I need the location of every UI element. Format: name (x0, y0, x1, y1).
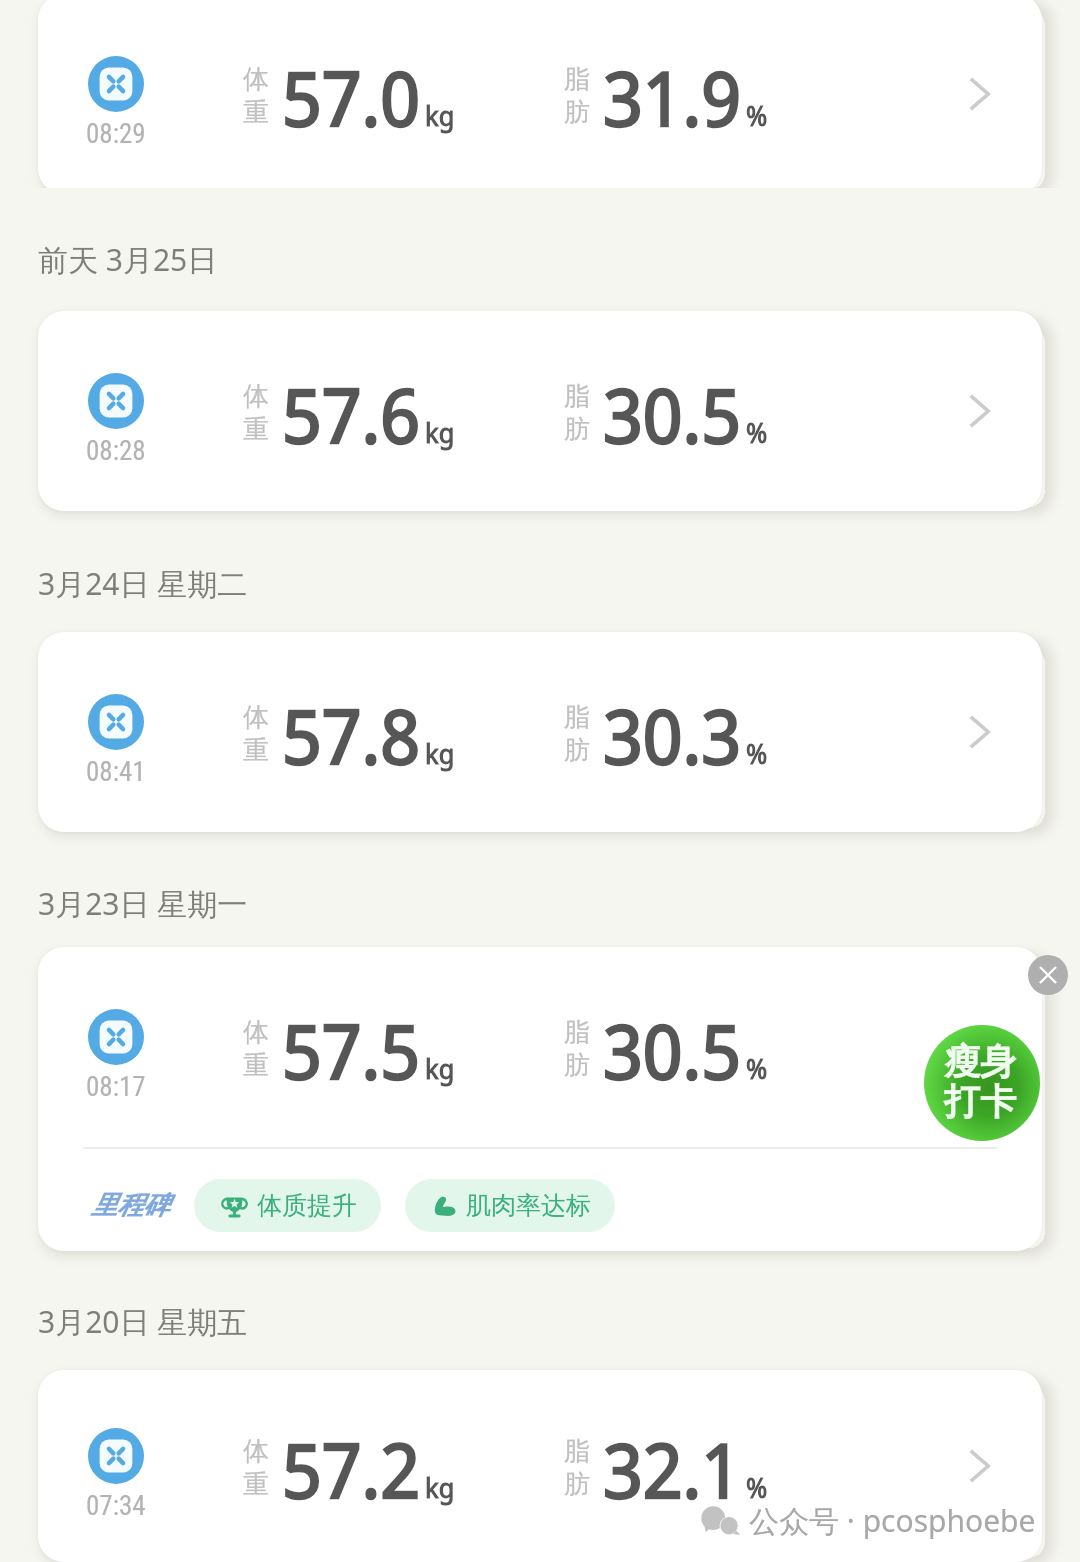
staticText: 30.5 (603, 1000, 742, 1101)
staticText: 07:34 (86, 1490, 146, 1522)
staticText: 重 (243, 1468, 269, 1501)
staticText: kg (425, 1469, 455, 1506)
staticText: 08:29 (86, 118, 146, 150)
button[interactable]: 瘦身 打卡 (924, 1025, 1040, 1141)
staticText: kg (425, 414, 455, 451)
staticText: 57.5 (282, 1000, 421, 1101)
staticText: kg (425, 1050, 455, 1087)
staticText: 重 (243, 734, 269, 767)
other: Open record details (969, 77, 990, 111)
staticText: kg (425, 97, 455, 134)
staticText: % (746, 1469, 768, 1506)
button[interactable]: 肌肉率达标 (405, 1179, 615, 1232)
button[interactable]: 体质提升 (194, 1179, 381, 1232)
staticText: % (746, 97, 768, 134)
staticText: 3月23日 星期一 (38, 883, 248, 924)
staticText: 脂 (564, 1435, 590, 1468)
staticText: 08:28 (86, 435, 146, 467)
staticText: 30.3 (603, 685, 742, 786)
other: Open record details (969, 394, 990, 428)
staticText: 肌肉率达标 (466, 1190, 591, 1221)
staticText: 脂 (564, 701, 590, 734)
staticText: 体 (243, 63, 269, 96)
staticText: 脂 (564, 63, 590, 96)
button[interactable]: 07:34 (38, 1370, 1042, 1562)
staticText: 肪 (564, 1049, 590, 1082)
staticText: 3月20日 星期五 (38, 1301, 248, 1342)
staticText: 3月24日 星期二 (38, 563, 248, 604)
staticText: 31.9 (603, 47, 742, 148)
staticText: 重 (243, 1049, 269, 1082)
staticText: 57.6 (282, 364, 421, 465)
staticText: 肪 (564, 1468, 590, 1501)
button[interactable]: Close (1028, 955, 1068, 995)
staticText: 32.1 (603, 1419, 742, 1520)
staticText: 57.8 (282, 685, 421, 786)
staticText: 08:17 (86, 1071, 146, 1103)
staticText: 肪 (564, 413, 590, 446)
staticText: % (746, 1050, 768, 1087)
other: Open record details (969, 1030, 990, 1064)
button[interactable]: 08:28 (38, 311, 1042, 511)
staticText: 30.5 (603, 364, 742, 465)
other: Open record details (969, 715, 990, 749)
staticText: 前天 3月25日 (38, 239, 218, 280)
staticText: kg (425, 735, 455, 772)
staticText: 体质提升 (257, 1190, 357, 1221)
staticText: % (746, 414, 768, 451)
staticText: 体 (243, 380, 269, 413)
staticText: 里程碑 (91, 1189, 169, 1222)
staticText: 肪 (564, 96, 590, 129)
button[interactable]: 08:17 (38, 947, 1042, 1147)
staticText: % (746, 735, 768, 772)
button[interactable]: 08:29 (38, 0, 1042, 188)
staticText: 体 (243, 701, 269, 734)
other: Open record details (969, 1449, 990, 1483)
staticText: 57.0 (282, 47, 421, 148)
staticText: 体 (243, 1435, 269, 1468)
staticText: 57.2 (282, 1419, 421, 1520)
staticText: 瘦身 打卡 (944, 1039, 1016, 1125)
staticText: 脂 (564, 380, 590, 413)
staticText: 重 (243, 96, 269, 129)
staticText: 体 (243, 1016, 269, 1049)
staticText: 公众号 · pcosphoebe (749, 1500, 1036, 1541)
button[interactable]: 08:41 (38, 632, 1042, 832)
staticText: 脂 (564, 1016, 590, 1049)
staticText: 重 (243, 413, 269, 446)
staticText: 08:41 (86, 756, 146, 788)
staticText: 肪 (564, 734, 590, 767)
